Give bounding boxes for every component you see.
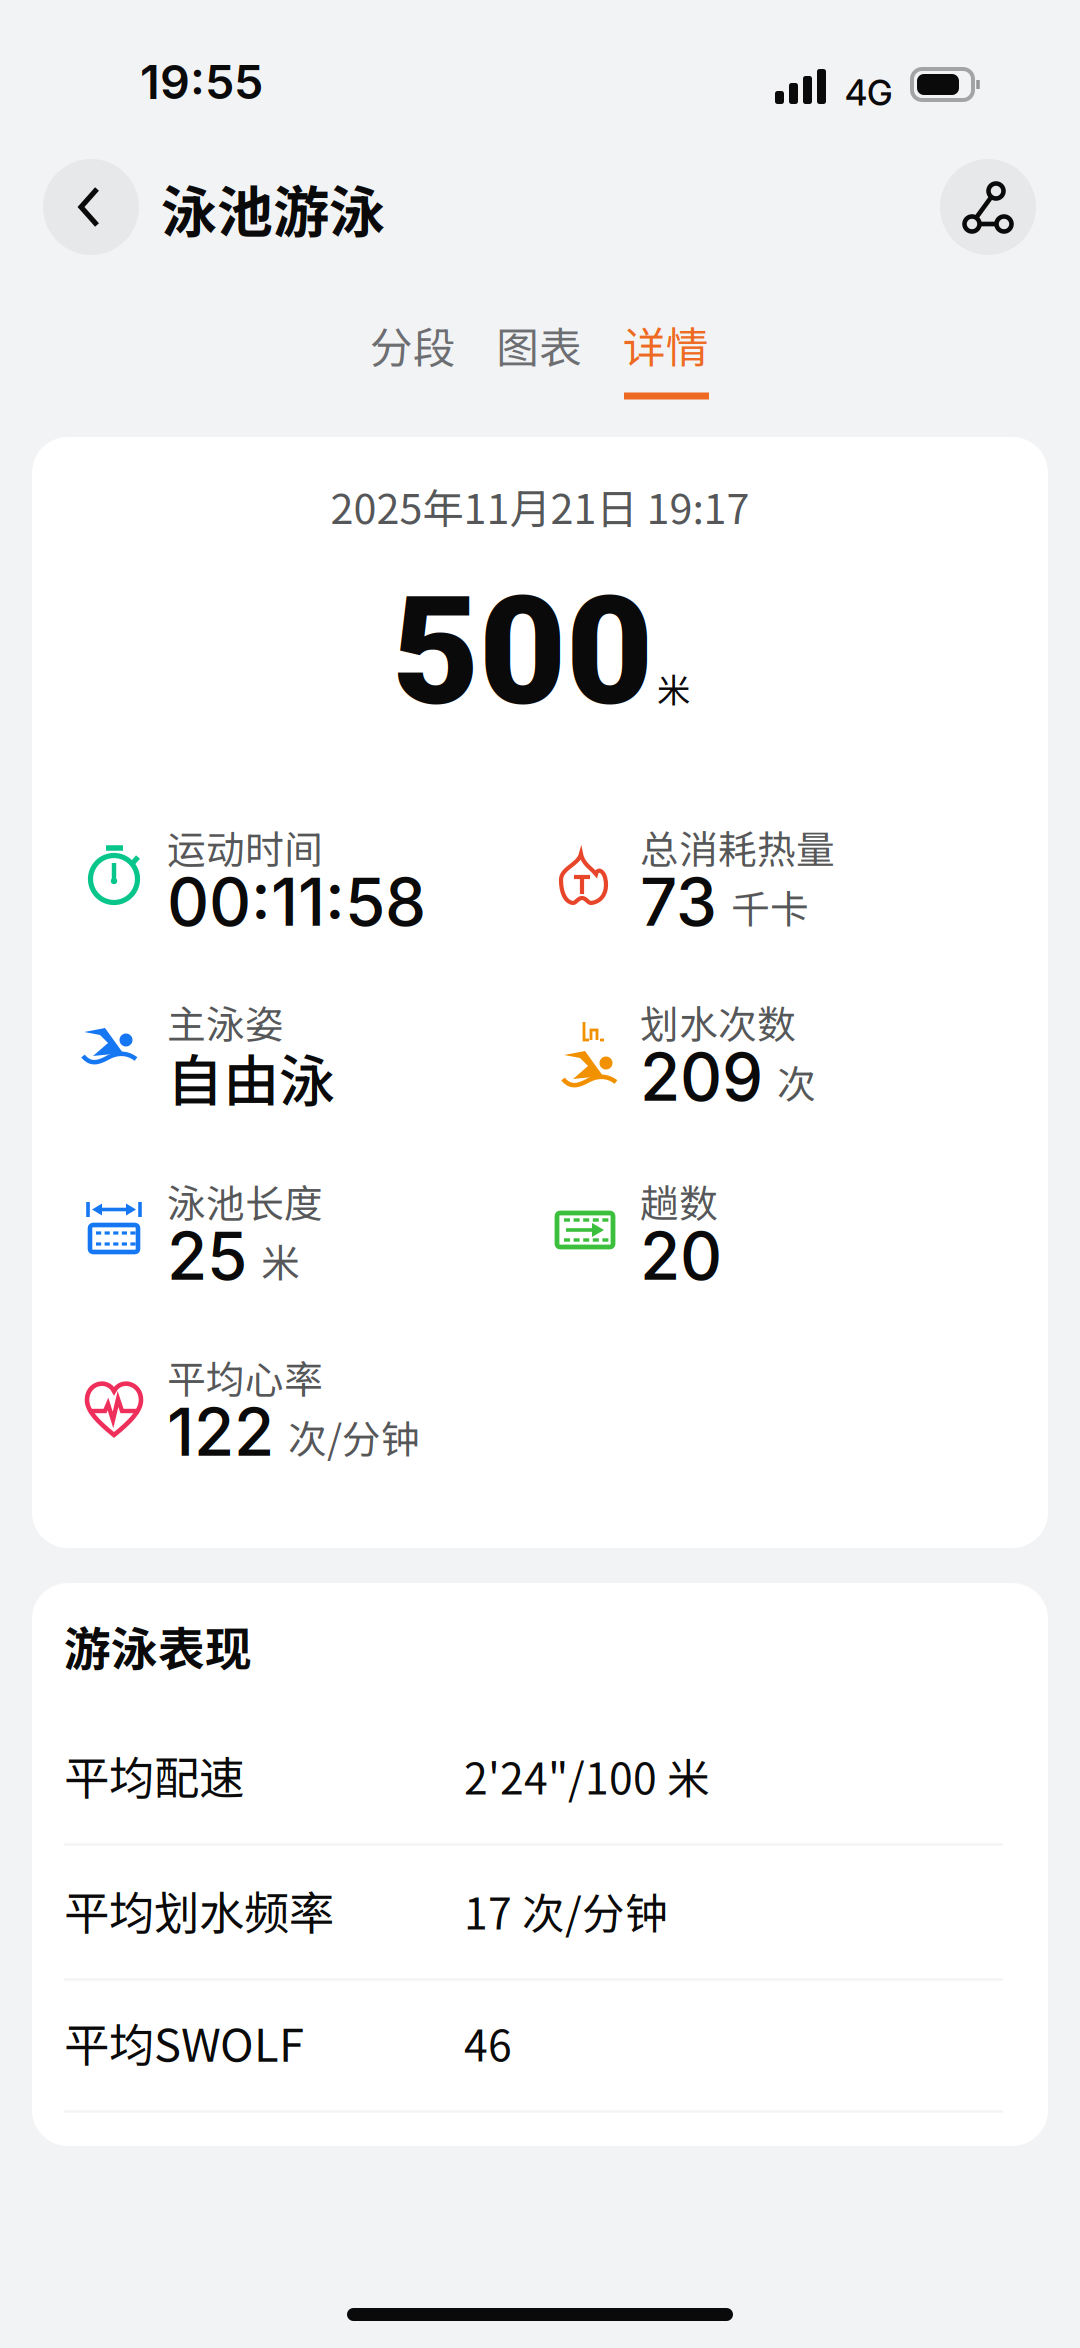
staticText: 趟数	[640, 1173, 718, 1229]
staticText: 总消耗热量	[640, 819, 835, 875]
staticText: 米	[261, 1232, 300, 1288]
staticText: 平均心率	[167, 1349, 323, 1405]
staticText: 平均配速	[64, 1742, 244, 1808]
staticText: 122	[167, 1392, 274, 1471]
staticText: 25	[167, 1216, 247, 1295]
staticText: 2025年11月21日 19:17	[330, 476, 749, 536]
staticText: 千卡	[731, 878, 809, 934]
staticText: 20	[640, 1216, 722, 1295]
staticText: 4G	[845, 72, 893, 114]
button[interactable]: 返回	[43, 159, 139, 255]
staticText: 自由泳	[167, 1036, 335, 1118]
button[interactable]: 分享	[940, 159, 1036, 255]
staticText: 主泳姿	[167, 994, 284, 1050]
staticText: 划水次数	[640, 994, 796, 1050]
staticText: 游泳表现	[64, 1612, 252, 1680]
staticText: 00:11:58	[167, 862, 426, 941]
staticText: 分段	[370, 314, 456, 376]
staticText: 次	[777, 1053, 816, 1109]
staticText: 17 次/分钟	[464, 1880, 668, 1942]
staticText: 运动时间	[167, 819, 323, 875]
staticText: 泳池长度	[167, 1173, 323, 1229]
staticText: 平均划水频率	[64, 1877, 334, 1943]
staticText: 图表	[496, 314, 582, 376]
staticText: 详情	[623, 314, 709, 376]
button[interactable]: 图表	[476, 300, 602, 410]
staticText: 米	[657, 664, 690, 712]
staticText: 73	[640, 862, 717, 941]
staticText: 46	[464, 2012, 512, 2074]
staticText: 209	[640, 1037, 763, 1116]
staticText: 泳池游泳	[161, 167, 385, 249]
button[interactable]: 分段	[350, 300, 476, 410]
staticText: 500	[392, 564, 653, 740]
staticText: 平均SWOLF	[64, 2009, 304, 2075]
staticText: 19:55	[140, 54, 263, 110]
staticText: 2'24"/100 米	[464, 1745, 710, 1807]
staticText: 次/分钟	[288, 1408, 420, 1464]
button[interactable]: 详情	[603, 300, 729, 410]
